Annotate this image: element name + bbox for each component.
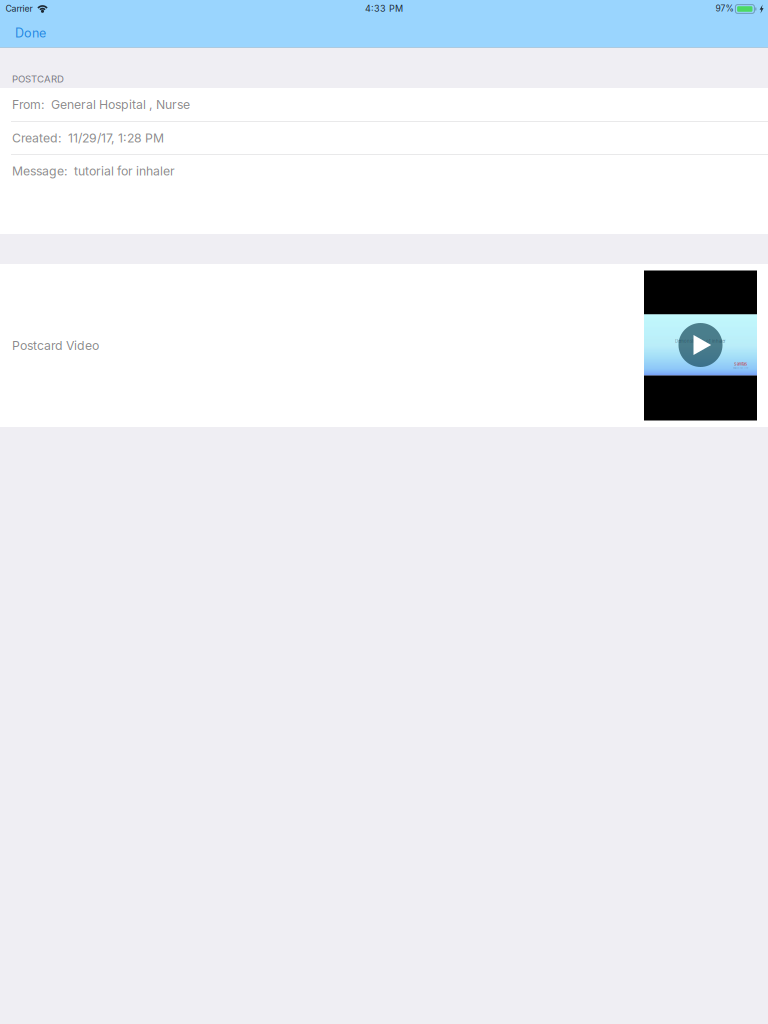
staticText: Postcard Video	[12, 338, 99, 353]
staticText: Carrier	[5, 3, 32, 14]
staticText: Done	[15, 25, 46, 41]
staticText: From: General Hospital , Nurse	[12, 97, 190, 112]
staticText: Created: 11/29/17, 1:28 PM	[12, 131, 164, 145]
staticText: health for life	[733, 367, 748, 369]
staticText: 4:33 PM	[365, 3, 403, 14]
button[interactable]: Done	[0, 18, 96, 48]
staticText: Demonstration of inhaler	[675, 338, 726, 344]
staticText: Sanitas	[734, 362, 747, 366]
button[interactable]: Postcard Video	[0, 264, 768, 427]
staticText: 97%	[715, 3, 733, 14]
staticText: Message: tutorial for inhaler	[12, 164, 175, 178]
staticText: POSTCARD	[12, 73, 64, 85]
